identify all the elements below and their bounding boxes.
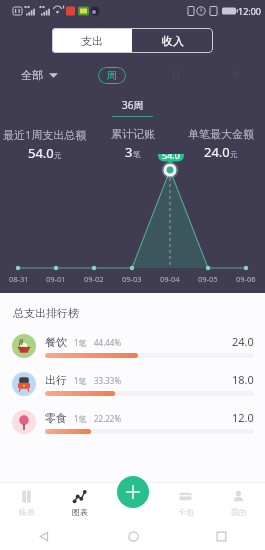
staticText: 笔: [133, 150, 141, 159]
staticText: 1笔: [74, 337, 87, 348]
staticText: 单笔最大金额: [188, 127, 254, 141]
button[interactable]: Add record: [117, 476, 149, 508]
staticText: 18.0: [232, 372, 254, 387]
staticText: 24.0: [204, 143, 230, 161]
other: Home: [128, 531, 139, 542]
staticText: 账单: [19, 507, 35, 517]
staticText: 12.0: [232, 410, 254, 425]
staticText: 餐饮: [45, 335, 67, 349]
other: Back: [39, 531, 50, 542]
button[interactable]: 收入: [132, 28, 213, 53]
button[interactable]: 出行: [0, 365, 265, 403]
staticText: 零食: [45, 411, 67, 425]
staticText: 支出: [81, 34, 103, 48]
staticText: 我的: [231, 507, 247, 517]
staticText: 09-02: [84, 274, 104, 284]
button[interactable]: 全部: [21, 68, 58, 82]
staticText: 元: [54, 151, 62, 160]
staticText: 54.0: [28, 144, 54, 162]
button[interactable]: 餐饮: [0, 327, 265, 365]
staticText: 月: [171, 69, 181, 82]
staticText: 最近1周支出总额: [3, 127, 87, 142]
button[interactable]: 周: [98, 67, 126, 84]
staticText: 元: [230, 150, 238, 159]
staticText: 图表: [72, 507, 88, 517]
staticText: 09-05: [198, 274, 218, 284]
button[interactable]: 账单: [0, 483, 53, 522]
button[interactable]: 卡包: [159, 483, 212, 522]
staticText: 08-31: [9, 274, 29, 284]
staticText: 36周: [122, 98, 144, 112]
staticText: 卡包: [178, 507, 194, 517]
staticText: 09-06: [236, 274, 256, 284]
staticText: 09-04: [160, 274, 180, 284]
staticText: 总支出排行榜: [13, 306, 79, 320]
staticText: 09-01: [46, 274, 66, 284]
staticText: 出行: [45, 373, 67, 387]
staticText: 09-03: [122, 274, 142, 284]
button[interactable]: 图表: [53, 483, 106, 522]
other: Recents: [216, 531, 227, 542]
staticText: 44.44%: [94, 337, 122, 348]
button[interactable]: 我的: [212, 483, 265, 522]
button[interactable]: 零食: [0, 403, 265, 441]
staticText: 周: [107, 69, 117, 82]
staticText: 12:00: [238, 5, 262, 17]
button[interactable]: 支出: [52, 28, 132, 53]
staticText: 22.22%: [94, 413, 122, 424]
staticText: 1笔: [74, 413, 87, 424]
staticText: 全部: [21, 68, 43, 82]
staticText: 1笔: [74, 375, 87, 386]
staticText: 3: [125, 143, 133, 161]
staticText: 收入: [162, 34, 184, 48]
staticText: 54.0: [159, 154, 183, 161]
staticText: 24.0: [232, 334, 254, 349]
staticText: 累计记账: [111, 127, 155, 141]
staticText: 年: [232, 69, 242, 82]
staticText: 33.33%: [94, 375, 122, 386]
